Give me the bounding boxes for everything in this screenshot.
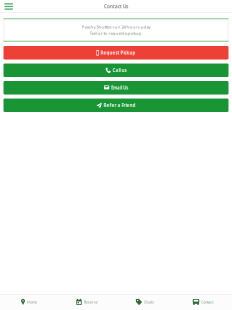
- staticText: Text us to request a pickup.: [89, 30, 142, 36]
- button[interactable]: Menu: [0, 0, 19, 13]
- staticText: Reserve: [84, 299, 98, 305]
- staticText: Contact Us: [104, 3, 128, 10]
- button[interactable]: Refer a Friend: [3, 98, 228, 112]
- button[interactable]: Reserve: [58, 294, 116, 310]
- button[interactable]: Home: [0, 294, 58, 310]
- button[interactable]: Email Us: [3, 81, 228, 94]
- staticText: Home: [27, 299, 37, 305]
- staticText: Contact: [201, 299, 213, 305]
- button[interactable]: Request Pickup: [3, 46, 228, 59]
- staticText: Call us: [113, 67, 127, 73]
- staticText: Refer a Friend: [104, 102, 136, 108]
- button[interactable]: Call us: [3, 63, 228, 77]
- staticText: Request Pickup: [101, 50, 136, 56]
- staticText: Deals: [144, 299, 154, 305]
- staticText: Email Us: [111, 85, 128, 91]
- button[interactable]: Contact: [174, 294, 232, 310]
- staticText: Peachy Shuttles run 24 hours a day: [81, 24, 150, 30]
- button[interactable]: Deals: [116, 294, 174, 310]
